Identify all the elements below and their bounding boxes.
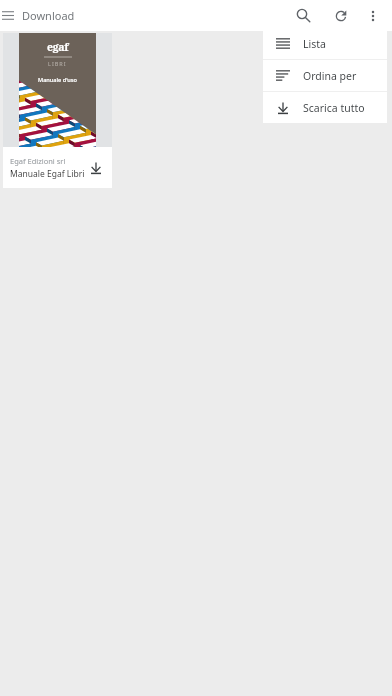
staticText: Manuale d'uso bbox=[38, 76, 77, 84]
staticText: Ordina per bbox=[303, 69, 357, 83]
staticText: LIBRI bbox=[48, 60, 67, 67]
staticText: egaf bbox=[47, 40, 69, 54]
button[interactable]: Download bbox=[85, 157, 107, 179]
button[interactable]: Egaf Edizioni srl bbox=[3, 147, 112, 188]
button[interactable]: Search bbox=[285, 0, 322, 31]
button[interactable]: Lista bbox=[263, 28, 387, 59]
staticText: Egaf Edizioni srl bbox=[10, 156, 66, 166]
button[interactable]: Refresh bbox=[322, 0, 359, 31]
button[interactable]: Scarica tutto bbox=[263, 92, 387, 123]
button[interactable]: More options bbox=[359, 0, 387, 31]
button[interactable]: Ordina per bbox=[263, 60, 387, 91]
staticText: Scarica tutto bbox=[303, 101, 365, 115]
staticText: Manuale Egaf Libri bbox=[10, 168, 85, 180]
staticText: Lista bbox=[303, 37, 326, 51]
button[interactable]: Menu bbox=[0, 0, 15, 31]
staticText: Download bbox=[22, 8, 75, 23]
